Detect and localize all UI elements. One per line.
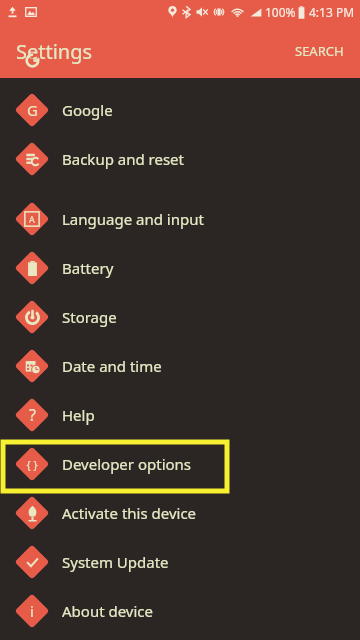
staticText: { } [26,457,38,472]
other: Screenshot [25,6,37,18]
other: Wi-Fi [231,7,244,18]
staticText: 100% [265,4,296,20]
staticText: System Update [62,552,169,572]
button[interactable]: A [0,194,360,243]
staticText: Google [62,100,113,120]
staticText: Language and input [62,209,204,229]
button[interactable]: System Update [0,537,360,586]
staticText: Battery [62,258,114,278]
button[interactable]: Date and time [0,341,360,390]
staticText: 4:13 PM [309,4,355,20]
staticText: A [29,213,35,225]
other: Upload [7,6,18,18]
other: Signal [250,7,262,18]
button[interactable]: i [0,586,360,635]
button[interactable]: Battery [0,243,360,292]
staticText: Settings [16,38,93,65]
staticText: Date and time [62,356,162,376]
button[interactable]: ? [0,390,360,439]
staticText: i [30,601,34,621]
button[interactable]: { } [0,439,360,488]
staticText: SEARCH [295,42,344,60]
button[interactable]: SEARCH [279,32,360,70]
staticText: Activate this device [62,503,197,523]
button[interactable]: Settings [0,30,101,73]
button[interactable]: Storage [0,292,360,341]
staticText: Developer options [62,454,192,474]
other: Bluetooth [182,6,191,18]
button[interactable]: G [0,85,360,134]
button[interactable]: Backup and reset [0,134,360,183]
other: Muted [196,6,208,18]
staticText: Storage [62,307,117,327]
button[interactable]: Activate this device [0,488,360,537]
other: Battery [298,6,305,19]
staticText: About device [62,601,154,621]
staticText: G [27,100,38,120]
staticText: ? [29,404,36,426]
other: Vibrate [213,6,225,18]
staticText: Help [62,405,95,425]
other: Location [168,6,177,18]
staticText: Backup and reset [62,149,184,169]
